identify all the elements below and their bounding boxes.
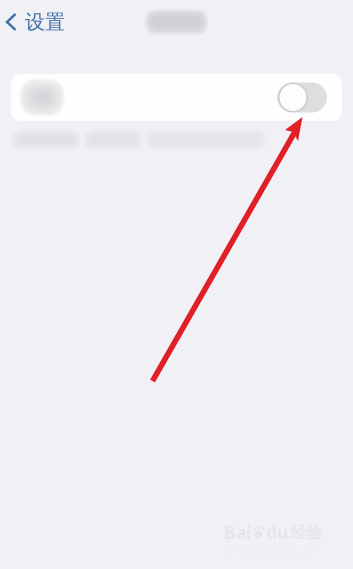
button[interactable]: 设置: [0, 2, 65, 42]
staticText: 设置: [25, 10, 65, 34]
staticText: Bai: [224, 521, 251, 544]
staticText: du: [266, 521, 288, 544]
staticText: 经验: [290, 522, 322, 542]
button[interactable]: [11, 74, 342, 121]
